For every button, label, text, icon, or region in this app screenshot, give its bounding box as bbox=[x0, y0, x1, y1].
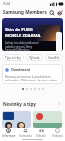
button[interactable]: Podpora bbox=[49, 128, 65, 137]
staticText: Komunita bbox=[19, 134, 32, 137]
staticText: Tipy a triky bbox=[5, 56, 21, 60]
staticText: 9:24 bbox=[3, 1, 11, 6]
staticText: Soutěže bbox=[48, 56, 60, 60]
staticText: Výhody bbox=[29, 56, 40, 60]
staticText: MOBILE ZDARMA bbox=[5, 33, 41, 39]
button[interactable] bbox=[2, 111, 31, 128]
staticText: Bonusy za recenzi k produktům vyčerpáte.… bbox=[5, 75, 58, 81]
button[interactable]: Benefits bbox=[56, 8, 64, 17]
button[interactable]: Oznámení bbox=[2, 64, 63, 84]
button[interactable]: Search bbox=[47, 8, 56, 17]
staticText: Skin do PUBG bbox=[5, 27, 33, 33]
button[interactable]: Komunita bbox=[17, 128, 33, 137]
button[interactable]: Skin do PUBG bbox=[2, 18, 63, 51]
staticText: Informace bbox=[2, 134, 16, 137]
button[interactable]: Výhody bbox=[26, 54, 43, 61]
button[interactable]: Novinky a tipy bbox=[3, 99, 61, 108]
staticText: Oznámení bbox=[11, 67, 31, 72]
button[interactable]: Informace bbox=[0, 128, 17, 137]
staticText: Novinky a tipy bbox=[3, 101, 36, 107]
staticText: Zahraj si a získej exkluzivní odměny jen… bbox=[5, 41, 39, 51]
staticText: Samsung Members bbox=[3, 9, 47, 15]
staticText: Podpora bbox=[52, 134, 63, 137]
button[interactable]: Soutěže bbox=[45, 54, 63, 61]
staticText: Výhody bbox=[36, 134, 46, 137]
button[interactable]: Výhody bbox=[33, 128, 49, 137]
button[interactable]: Tipy a triky bbox=[2, 54, 24, 61]
button[interactable] bbox=[33, 111, 62, 128]
